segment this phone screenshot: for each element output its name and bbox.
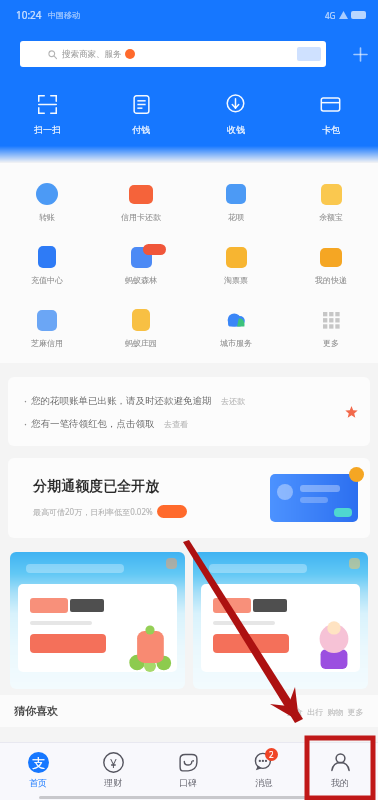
button[interactable]: · [8,377,370,446]
staticText: 转账 [39,212,55,222]
button[interactable]: 蚂蚁森林 [94,229,188,292]
button[interactable]: 城市服务 [188,292,283,355]
staticText: 10:24 [16,8,42,22]
staticText: · [24,416,27,431]
staticText: 您有一笔待领红包，点击领取 [31,418,155,430]
staticText: 美食 出行 购物 更多 [287,706,364,717]
button[interactable]: 搜索商家、服务 [20,41,326,67]
staticText: 蚂蚁庄园 [125,338,157,348]
staticText: 信用卡还款 [121,212,161,222]
staticText: 最高可借20万，日利率低至0.02% [33,506,153,517]
staticText: 我的快递 [315,275,347,285]
staticText: 理财 [104,777,122,788]
staticText: 充值中心 [31,275,63,285]
button[interactable]: 芝麻信用 [0,292,94,355]
button[interactable]: 淘票票 [188,229,283,292]
button[interactable]: 2 [226,743,302,795]
button[interactable]: 信用卡还款 [94,166,188,229]
staticText: 支 [32,755,45,771]
staticText: ¥ [110,755,117,771]
staticText: 分期通额度已全开放 [33,478,159,496]
staticText: 芝麻信用 [31,338,63,348]
staticText: 去还款 [221,396,245,406]
button[interactable]: 余额宝 [283,166,378,229]
staticText: 我的 [331,777,349,788]
button[interactable]: 付钱 [94,93,188,135]
button[interactable]: 更多 [283,292,378,355]
button[interactable] [10,552,185,689]
button[interactable]: 支 [0,743,75,795]
staticText: 余额宝 [319,212,343,222]
staticText: 城市服务 [220,338,252,348]
button[interactable]: 我的 [302,743,378,795]
button[interactable]: 分期通额度已全开放 [8,458,370,538]
staticText: 扫一扫 [34,124,61,135]
staticText: · [24,393,27,408]
staticText: 猜你喜欢 [14,704,58,718]
staticText: 消息 [255,777,273,788]
staticText: 首页 [29,777,47,788]
staticText: 付钱 [132,124,150,135]
staticText: 去查看 [164,419,188,429]
staticText: 蚂蚁森林 [125,275,157,285]
button[interactable]: 卡包 [283,93,378,135]
button[interactable]: 充值中心 [0,229,94,292]
staticText: 更多 [323,338,339,348]
button[interactable]: Add [350,44,370,64]
staticText: 收钱 [227,124,245,135]
staticText: 口碑 [179,777,197,788]
button[interactable]: 我的快递 [283,229,378,292]
staticText: 淘票票 [224,275,248,285]
button[interactable]: 蚂蚁庄园 [94,292,188,355]
staticText: 中国移动 [48,10,80,20]
button[interactable] [193,552,368,689]
button[interactable]: 收钱 [188,93,283,135]
button[interactable]: 花呗 [188,166,283,229]
button[interactable]: ¥ [75,743,150,795]
staticText: 您的花呗账单已出账，请及时还款避免逾期 [31,395,212,407]
button[interactable]: 扫一扫 [0,93,94,135]
button[interactable]: 口碑 [150,743,226,795]
staticText: 4G [325,10,336,21]
staticText: 花呗 [228,212,244,222]
staticText: 卡包 [322,124,340,135]
staticText: 2 [269,749,274,760]
staticText: 搜索商家、服务 [62,49,122,60]
button[interactable]: 转账 [0,166,94,229]
